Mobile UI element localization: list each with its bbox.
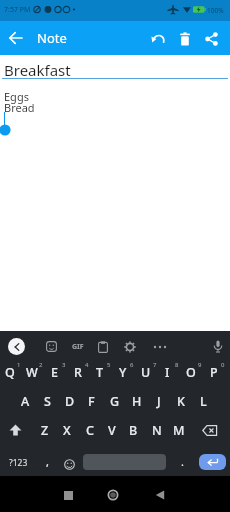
button[interactable] <box>104 486 122 504</box>
button[interactable]: O <box>179 359 202 385</box>
button[interactable]: F <box>80 388 103 414</box>
staticText: Q <box>5 364 15 381</box>
button[interactable]: V <box>100 417 123 443</box>
button[interactable]: N <box>145 417 168 443</box>
staticText: 1 <box>17 361 21 369</box>
staticText: I <box>165 364 170 381</box>
button[interactable]: B <box>122 417 145 443</box>
button[interactable]: GIF <box>66 339 90 354</box>
button[interactable] <box>197 419 223 441</box>
staticText: F <box>88 393 95 410</box>
staticText: Z <box>41 422 49 439</box>
staticText: 4 <box>85 361 89 369</box>
staticText: B <box>129 422 138 439</box>
button[interactable]: S <box>36 388 59 414</box>
staticText: 7:57 PM <box>4 5 31 15</box>
staticText: 100% <box>207 6 224 15</box>
button[interactable]: L <box>192 388 215 414</box>
button[interactable]: W <box>20 359 43 385</box>
button[interactable]: Y <box>111 359 134 385</box>
button[interactable]: I <box>156 359 179 385</box>
button[interactable]: , <box>40 453 54 469</box>
staticText: , <box>46 454 49 469</box>
button[interactable]: H <box>125 388 148 414</box>
button[interactable]: . <box>176 453 188 469</box>
staticText: A <box>21 393 30 410</box>
staticText: L <box>200 393 207 410</box>
button[interactable] <box>8 338 25 355</box>
staticText: J <box>157 393 161 410</box>
button[interactable] <box>148 29 168 49</box>
button[interactable]: D <box>58 388 81 414</box>
staticText: W <box>26 364 38 381</box>
staticText: T <box>96 364 104 381</box>
button[interactable]: Q <box>0 359 21 385</box>
staticText: Note <box>37 29 67 47</box>
staticText: 2 <box>39 361 43 369</box>
button[interactable] <box>3 419 27 441</box>
button[interactable] <box>59 486 77 504</box>
button[interactable] <box>44 340 58 353</box>
staticText: M <box>173 422 185 439</box>
button[interactable] <box>210 338 225 354</box>
staticText: R <box>74 364 82 381</box>
button[interactable]: E <box>43 359 66 385</box>
button[interactable]: A <box>14 388 37 414</box>
staticText: P <box>210 364 218 381</box>
staticText: GIF <box>72 342 84 352</box>
staticText: 0 <box>221 361 225 369</box>
staticText: O <box>186 364 196 381</box>
button[interactable]: J <box>147 388 170 414</box>
button[interactable] <box>150 342 170 352</box>
staticText: V <box>108 422 116 439</box>
staticText: 5 <box>107 361 111 369</box>
staticText: C <box>86 422 94 439</box>
button[interactable] <box>123 340 137 353</box>
button[interactable]: Z <box>33 417 56 443</box>
button[interactable]: R <box>66 359 89 385</box>
staticText: E <box>51 364 58 381</box>
staticText: 9 <box>198 361 202 369</box>
button[interactable]: X <box>55 417 78 443</box>
staticText: K <box>177 393 185 410</box>
button[interactable] <box>96 340 110 353</box>
staticText: ?123 <box>9 457 28 469</box>
button[interactable]: U <box>134 359 157 385</box>
button[interactable]: T <box>88 359 111 385</box>
staticText: Y <box>119 364 127 381</box>
button[interactable] <box>200 29 222 49</box>
button[interactable]: K <box>169 388 192 414</box>
button[interactable] <box>175 29 195 49</box>
staticText: 8 <box>175 361 179 369</box>
staticText: 6 <box>130 361 134 369</box>
button[interactable] <box>62 457 76 471</box>
staticText: H <box>132 393 142 410</box>
staticText: . <box>181 454 184 469</box>
button[interactable] <box>83 454 166 470</box>
button[interactable] <box>6 29 26 47</box>
staticText: N <box>152 422 162 439</box>
staticText: D <box>65 393 75 410</box>
button[interactable]: C <box>78 417 101 443</box>
staticText: Eggs Bread <box>4 89 35 115</box>
staticText: U <box>141 364 151 381</box>
button[interactable]: ?123 <box>5 455 31 471</box>
staticText: Breakfast <box>4 60 71 78</box>
staticText: G <box>110 393 120 410</box>
button[interactable] <box>151 486 169 504</box>
staticText: S <box>44 393 51 410</box>
button[interactable]: M <box>167 417 190 443</box>
staticText: 3 <box>62 361 66 369</box>
button[interactable]: G <box>103 388 126 414</box>
staticText: X <box>63 422 71 439</box>
button[interactable] <box>199 454 226 470</box>
button[interactable]: P <box>202 359 225 385</box>
staticText: 7 <box>153 361 157 369</box>
